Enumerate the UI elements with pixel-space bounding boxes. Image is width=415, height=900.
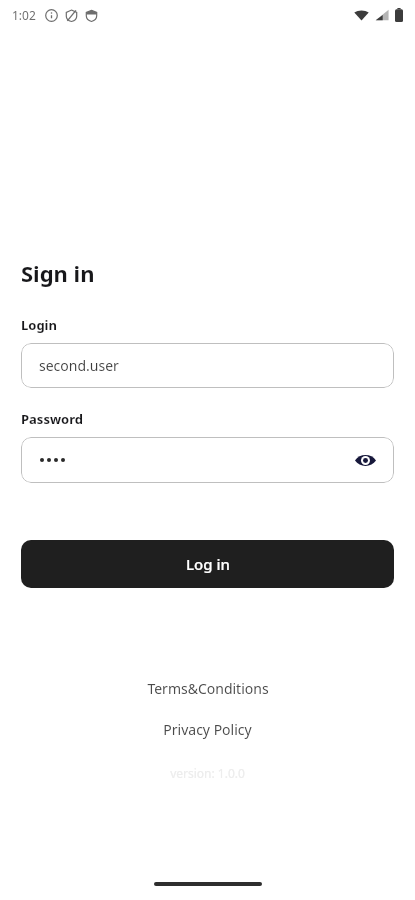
staticText: Password [21,410,83,428]
button[interactable]: Log in [21,540,394,588]
staticText: Login [21,316,57,334]
button[interactable]: Show password [21,437,394,483]
staticText: Log in [186,554,230,574]
staticText: version: 1.0.0 [170,765,245,781]
staticText: Sign in [21,258,95,288]
staticText: 1:02 [12,7,36,23]
button[interactable]: Show password [350,445,380,475]
button[interactable]: second.user [21,343,394,388]
staticText: second.user [39,356,119,375]
button[interactable]: Privacy Policy [0,716,415,743]
staticText: Privacy Policy [163,720,252,739]
button[interactable]: Terms&Conditions [0,675,415,702]
staticText: Terms&Conditions [147,679,269,698]
